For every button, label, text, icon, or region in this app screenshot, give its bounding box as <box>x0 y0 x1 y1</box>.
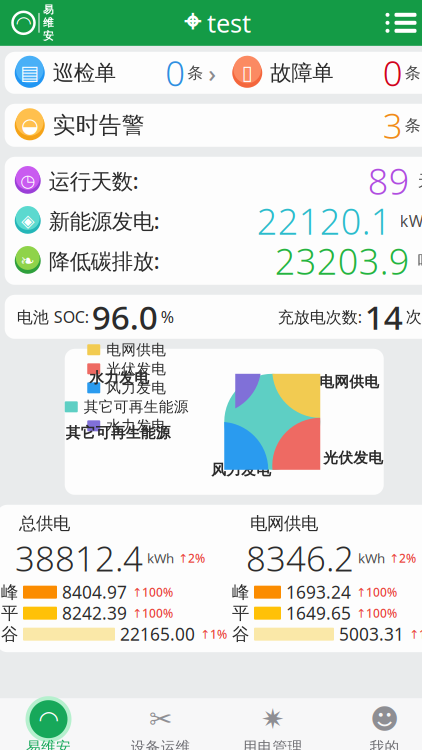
staticText: ↑100% <box>356 584 397 600</box>
staticText: ◒ <box>21 114 38 137</box>
staticText: 我的 <box>369 738 399 750</box>
staticText: ◠ <box>16 12 30 33</box>
staticText: 14 <box>365 295 403 339</box>
staticText: 降低碳排放: <box>49 247 160 275</box>
staticText: 次 <box>406 307 422 327</box>
staticText: ✷ <box>261 703 284 735</box>
staticText: 运行天数: <box>49 167 139 195</box>
staticText: ✂ <box>149 703 172 735</box>
staticText: 5003.31 <box>339 623 404 646</box>
staticText: 总供电 <box>19 513 70 534</box>
staticText: 巡检单 <box>53 60 116 86</box>
staticText: 易维安 <box>26 738 71 750</box>
staticText: ◷ <box>20 171 35 191</box>
staticText: 1693.24 <box>286 581 351 604</box>
staticText: 0 <box>165 50 185 96</box>
staticText: ↑1% <box>200 626 227 642</box>
staticText: 条 <box>187 63 203 83</box>
staticText: kWh <box>358 549 385 567</box>
staticText: 8242.39 <box>62 602 127 625</box>
staticText: ☻ <box>370 703 399 735</box>
staticText: 实时告警 <box>53 111 145 139</box>
staticText: 新能源发电: <box>49 207 160 235</box>
staticText: 故障单 <box>270 60 333 86</box>
staticText: ◈ <box>21 211 34 231</box>
button[interactable]: ⌖ <box>184 1 251 45</box>
staticText: › <box>208 57 216 89</box>
staticText: 电网供电 <box>106 341 166 359</box>
button[interactable]: ▤ <box>5 52 224 94</box>
staticText: kWh <box>400 210 422 231</box>
staticText: 3 <box>383 102 403 148</box>
staticText: 其它可再生能源 <box>84 398 189 416</box>
staticText: 光伏发电 <box>106 360 166 378</box>
staticText: 0 <box>383 50 403 96</box>
staticText: kWh <box>147 549 174 567</box>
staticText: 水力发电 <box>89 369 149 387</box>
staticText: 平 <box>232 602 249 624</box>
staticText: ↑2% <box>178 550 205 566</box>
staticText: 38812.4 <box>15 535 143 581</box>
staticText: 光伏发电 <box>323 449 383 467</box>
staticText: 风力发电 <box>211 461 271 479</box>
staticText: 其它可再生能源 <box>66 424 171 442</box>
staticText: 96.0 <box>92 295 158 339</box>
button[interactable]: ☻ <box>328 698 422 750</box>
button[interactable]: ◠ <box>0 698 104 750</box>
staticText: 电池 SOC: <box>17 306 89 327</box>
staticText: 吨 <box>418 251 422 271</box>
staticText: ▤ <box>20 61 39 84</box>
staticText: 23203.9 <box>275 237 410 285</box>
staticText: 风力发电 <box>106 379 166 397</box>
staticText: 条 <box>405 63 421 83</box>
staticText: ↑100% <box>132 584 173 600</box>
staticText: 天 <box>418 171 422 191</box>
staticText: test <box>207 6 251 40</box>
staticText: 89 <box>368 157 410 205</box>
button[interactable]: 易维安 Home <box>6 1 59 45</box>
button[interactable]: ✂ <box>104 698 216 750</box>
staticText: 峰 <box>1 581 18 603</box>
button[interactable]: ▯ <box>224 52 422 94</box>
staticText: 电网供电 <box>250 513 318 534</box>
staticText: 设备运维 <box>130 738 190 750</box>
button[interactable]: ◒ <box>5 104 422 147</box>
staticText: 条 <box>405 115 421 135</box>
staticText: ↑1% <box>409 626 422 642</box>
staticText: 水力发电 <box>106 417 166 435</box>
staticText: ↑100% <box>356 605 397 621</box>
button[interactable]: ✷ <box>216 698 328 750</box>
staticText: 易维安 <box>43 3 54 42</box>
staticText: 谷 <box>232 623 249 645</box>
staticText: 1649.65 <box>286 602 351 625</box>
staticText: ↑100% <box>132 605 173 621</box>
staticText: ◠ <box>39 706 57 733</box>
staticText: 用电管理 <box>242 738 302 750</box>
staticText: 电网供电 <box>319 373 379 391</box>
staticText: 谷 <box>1 623 18 645</box>
staticText: 22120.1 <box>257 197 392 245</box>
staticText: ❧ <box>20 251 35 271</box>
staticText: 8404.97 <box>62 581 127 604</box>
button[interactable]: Menu <box>375 1 422 45</box>
staticText: ↑2% <box>389 550 416 566</box>
staticText: 22165.00 <box>120 623 195 646</box>
staticText: 充放电次数: <box>278 306 362 327</box>
staticText: 平 <box>1 602 18 624</box>
staticText: ▯ <box>242 61 253 84</box>
staticText: ⌖ <box>184 8 201 37</box>
staticText: 8346.2 <box>246 535 354 581</box>
staticText: % <box>161 306 174 327</box>
staticText: 峰 <box>232 581 249 603</box>
